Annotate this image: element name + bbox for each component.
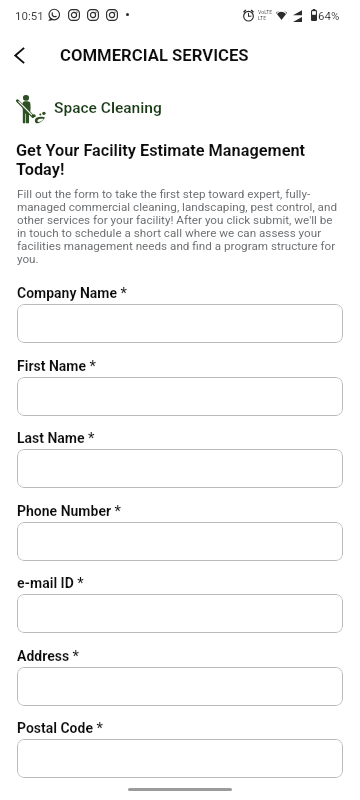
staticText: COMMERCIAL SERVICES (60, 46, 249, 66)
staticText: Postal Code * (17, 720, 103, 736)
staticText: 64% (318, 9, 340, 22)
button[interactable]: Last Name * (17, 449, 343, 488)
staticText: Last Name * (17, 430, 95, 446)
staticText: First Name * (17, 358, 96, 374)
button[interactable]: Postal Code * (17, 739, 343, 778)
staticText: LTE (258, 15, 267, 21)
staticText: Phone Number * (17, 503, 121, 519)
staticText: e-mail ID * (17, 575, 84, 591)
button[interactable]: Company Name * (17, 304, 343, 343)
staticText: 10:51 (15, 9, 44, 22)
staticText: Get Your Facility Estimate Management To… (16, 141, 342, 180)
staticText: Company Name * (17, 285, 127, 301)
button[interactable]: e-mail ID * (17, 594, 343, 633)
staticText: Address * (17, 648, 79, 664)
button[interactable]: Phone Number * (17, 522, 343, 561)
staticText: VoLTE (258, 9, 273, 15)
button[interactable]: Navigate back (1, 37, 37, 73)
button[interactable]: First Name * (17, 377, 343, 416)
button[interactable]: Address * (17, 667, 343, 706)
staticText: Fill out the form to take the first step… (17, 187, 343, 266)
staticText: Space Cleaning (54, 99, 162, 117)
